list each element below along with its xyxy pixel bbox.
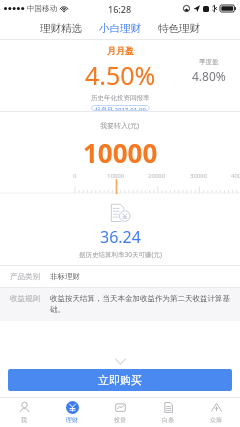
button[interactable]: 理财精选 [38, 19, 84, 38]
staticText: 小白理财 [99, 22, 141, 35]
staticText: 36.24 [100, 226, 141, 248]
staticText: 投资 [114, 416, 126, 424]
staticText: 10000 [83, 135, 158, 170]
staticText: 据历史结算利率30天可赚(元) [79, 250, 162, 259]
staticText: 我要转入(元) [100, 121, 140, 131]
button[interactable]: 投资 [96, 398, 144, 427]
button[interactable]: 特色理财 [156, 19, 202, 38]
staticText: 历史年化投资回报率 [91, 94, 150, 102]
staticText: 4.50% [85, 58, 156, 92]
button[interactable]: 我 [0, 398, 48, 427]
staticText: 特色理财 [158, 22, 200, 35]
staticText: 30000 [190, 172, 208, 180]
staticText: 收益按天结算，当天本金加收益作为第二天收益计算基础。 [50, 294, 232, 314]
staticText: 16:28 [108, 3, 132, 15]
staticText: 季度盈 [199, 58, 219, 66]
button[interactable]: 众筹 [192, 398, 240, 427]
staticText: 0 [73, 172, 77, 180]
button[interactable]: 小白理财 [97, 19, 143, 38]
staticText: 10000 [107, 172, 125, 180]
staticText: 起息日 2017-01-09 [95, 106, 146, 110]
button[interactable]: 产品类别 [0, 266, 240, 287]
staticText: 月月盈 [107, 45, 134, 56]
staticText: 产品类别 [10, 272, 42, 281]
staticText: 立即购买 [98, 373, 142, 387]
staticText: 非标理财 [50, 272, 80, 281]
staticText: 理财精选 [40, 22, 82, 35]
staticText: 我 [21, 416, 27, 424]
button[interactable]: 理财 [48, 398, 96, 427]
staticText: 中国移动 [27, 4, 57, 13]
staticText: 4.80% [192, 68, 226, 84]
staticText: 白条 [162, 416, 174, 424]
staticText: 收益规则 [10, 294, 42, 303]
staticText: 40000 [231, 172, 240, 180]
button[interactable]: 收益规则 [0, 288, 240, 321]
button[interactable]: 白条 [144, 398, 192, 427]
staticText: 20000 [148, 172, 166, 180]
staticText: 众筹 [210, 416, 222, 424]
staticText: 理财 [66, 416, 78, 424]
button[interactable]: 立即购买 [8, 369, 232, 391]
